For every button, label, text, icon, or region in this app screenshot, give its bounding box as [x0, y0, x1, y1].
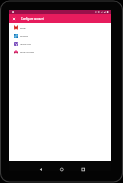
staticText: Configure account [21, 17, 44, 21]
staticText: Gmail [20, 27, 26, 30]
button[interactable]: Gmail [9, 24, 111, 32]
button[interactable]: Outlook [9, 32, 111, 40]
button[interactable]: Close [9, 14, 18, 23]
button[interactable]: Back [36, 166, 46, 171]
staticText: Outlook [20, 35, 28, 38]
button[interactable]: Recents [78, 166, 88, 171]
button[interactable]: Yahoo Mail [9, 40, 111, 48]
button[interactable]: Other account [9, 48, 111, 56]
staticText: Other account [20, 51, 35, 54]
button[interactable]: Home [57, 166, 67, 171]
staticText: Yahoo Mail [20, 43, 31, 46]
